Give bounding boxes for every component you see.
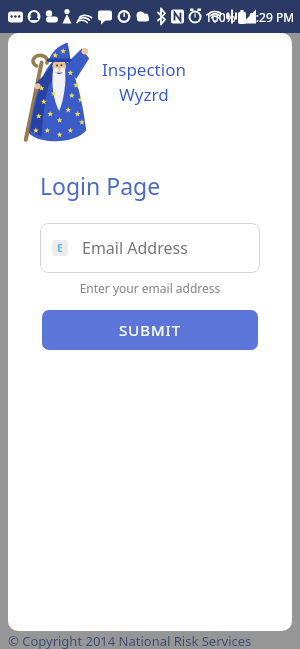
staticText: 8:29 PM: [249, 9, 295, 25]
staticText: E: [57, 241, 63, 255]
staticText: SUBMIT: [119, 320, 181, 340]
staticText: © Copyright 2014 National Risk Services: [8, 632, 300, 649]
staticText: Enter your email address: [8, 280, 292, 296]
other: Inspection Wyzrd logo: [20, 42, 92, 145]
staticText: Login Page: [40, 170, 161, 201]
staticText: 100%: [205, 9, 236, 25]
button[interactable]: E: [40, 223, 260, 273]
staticText: Wyzrd: [119, 83, 169, 106]
staticText: Email Address: [82, 237, 188, 259]
button[interactable]: SUBMIT: [42, 310, 258, 350]
staticText: Inspection: [102, 58, 186, 81]
